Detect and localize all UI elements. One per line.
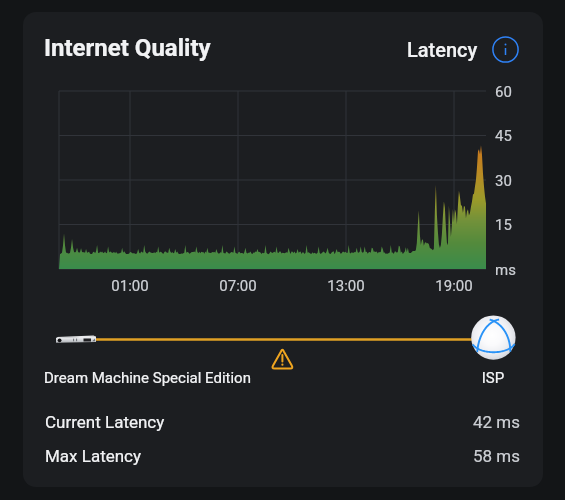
staticText: Internet Quality xyxy=(44,34,211,62)
staticText: 60 xyxy=(495,83,512,101)
staticText: 07:00 xyxy=(208,277,268,295)
staticText: 15 xyxy=(495,216,512,234)
staticText: Current Latency xyxy=(45,412,165,432)
staticText: ISP xyxy=(458,369,528,387)
button[interactable]: Max Latency xyxy=(23,439,543,473)
staticText: Dream Machine Special Edition xyxy=(44,369,251,387)
button[interactable]: Latency xyxy=(407,36,519,63)
staticText: Latency xyxy=(407,38,478,61)
staticText: 01:00 xyxy=(100,277,160,295)
button[interactable]: Current Latency xyxy=(23,405,543,439)
staticText: 42 ms xyxy=(473,412,521,432)
other: Latency info xyxy=(492,36,519,63)
staticText: 19:00 xyxy=(424,277,484,295)
staticText: ms xyxy=(495,261,516,279)
staticText: 45 xyxy=(495,127,512,145)
staticText: 30 xyxy=(495,172,512,190)
staticText: 13:00 xyxy=(316,277,376,295)
staticText: 58 ms xyxy=(473,446,521,466)
staticText: Max Latency xyxy=(45,446,142,466)
